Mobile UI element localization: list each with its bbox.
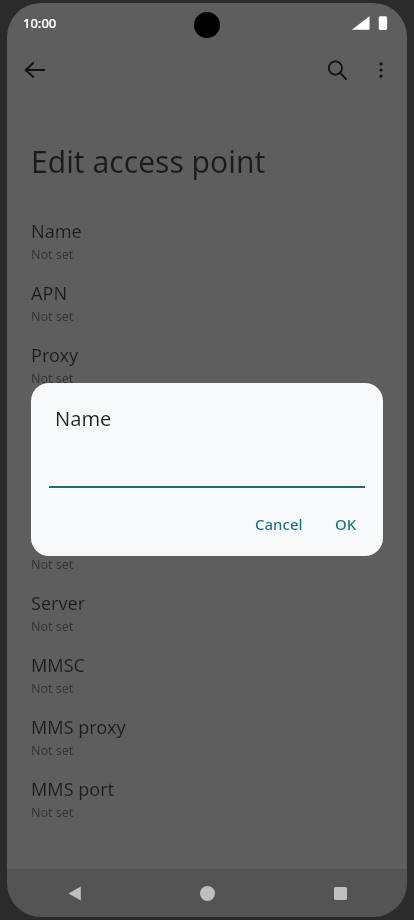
button[interactable]: Back: [7, 869, 141, 917]
staticText: 10:00: [23, 14, 57, 32]
button[interactable]: OK: [323, 508, 369, 540]
button[interactable]: Back: [13, 48, 57, 92]
button[interactable]: Port: [7, 396, 407, 458]
button[interactable]: MMS port: [7, 768, 407, 830]
button[interactable]: [49, 462, 365, 488]
button[interactable]: Proxy: [7, 334, 407, 396]
button[interactable]: More options: [359, 48, 403, 92]
staticText: Edit access point: [31, 141, 266, 182]
button[interactable]: Search: [315, 48, 359, 92]
staticText: Port: [31, 405, 67, 430]
staticText: MMS proxy: [31, 715, 126, 740]
staticText: Not set: [31, 246, 74, 263]
button[interactable]: Username: [7, 458, 407, 520]
staticText: Name: [55, 405, 112, 432]
staticText: Not set: [31, 742, 74, 759]
button[interactable]: Cancel: [243, 508, 315, 540]
staticText: Not set: [31, 556, 74, 573]
staticText: Not set: [31, 308, 74, 325]
staticText: Proxy: [31, 343, 79, 368]
staticText: MMSC: [31, 653, 85, 678]
staticText: Username: [31, 467, 119, 492]
staticText: MMS port: [31, 777, 115, 802]
staticText: Not set: [31, 804, 74, 821]
staticText: Not set: [31, 370, 74, 387]
button[interactable]: APN: [7, 272, 407, 334]
button[interactable]: Password: [7, 520, 407, 582]
staticText: Name: [31, 219, 82, 244]
button[interactable]: Home: [141, 869, 274, 917]
button[interactable]: Name: [7, 210, 407, 272]
button[interactable]: Server: [7, 582, 407, 644]
staticText: Password: [31, 529, 113, 554]
staticText: APN: [31, 281, 68, 306]
staticText: OK: [335, 514, 357, 534]
staticText: Cancel: [255, 514, 303, 534]
staticText: Not set: [31, 680, 74, 697]
button[interactable]: MMSC: [7, 644, 407, 706]
staticText: Not set: [31, 618, 74, 635]
button[interactable]: MMS proxy: [7, 706, 407, 768]
staticText: Server: [31, 591, 86, 616]
button[interactable]: Recent apps: [274, 869, 407, 917]
